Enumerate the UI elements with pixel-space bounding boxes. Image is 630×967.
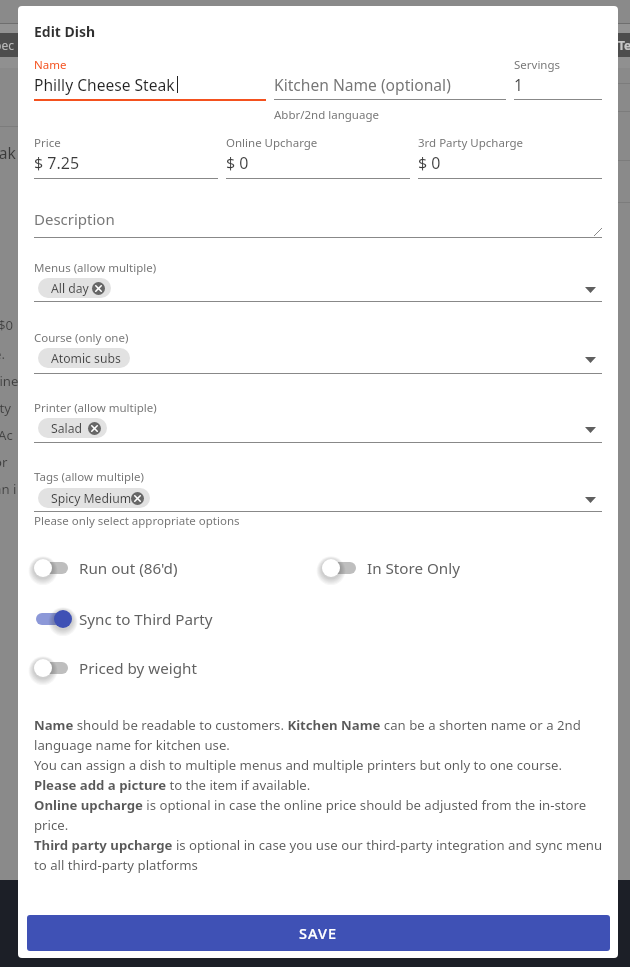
staticText: SAVE	[299, 923, 338, 943]
button[interactable]: Open dropdown	[578, 488, 602, 512]
staticText: $ 0	[418, 152, 441, 174]
staticText: $ 7.25	[34, 152, 80, 174]
staticText: Online Upcharge	[226, 135, 318, 151]
staticText: Atomic subs	[51, 350, 121, 367]
staticText: Salad	[51, 420, 83, 437]
button[interactable]: Open dropdown	[578, 418, 602, 442]
staticText: $ 0	[226, 152, 249, 174]
staticText: Te	[618, 37, 630, 53]
staticText: Course (only one)	[34, 330, 129, 346]
staticText: an i	[0, 480, 17, 498]
staticText: Servings	[514, 57, 561, 73]
staticText: Menus (allow multiple)	[34, 260, 157, 276]
button[interactable]: All day	[38, 278, 111, 298]
staticText: Edit Dish	[34, 22, 96, 41]
button[interactable]: Atomic subs	[38, 348, 130, 368]
button[interactable]: SAVE	[27, 915, 610, 951]
staticText: Tags (allow multiple)	[34, 469, 145, 485]
staticText: In Store Only	[367, 558, 460, 579]
staticText: Price	[34, 135, 61, 151]
button[interactable]: Priced by weight	[34, 652, 284, 684]
staticText: Sync to Third Party	[79, 609, 213, 630]
staticText: $0	[0, 316, 14, 334]
staticText: Printer (allow multiple)	[34, 400, 157, 416]
staticText: Ac	[0, 426, 13, 444]
staticText: Name should be readable to customers. Ki…	[34, 716, 603, 874]
button[interactable]: Open dropdown	[578, 278, 602, 302]
staticText: rty	[0, 399, 11, 417]
staticText: pec	[0, 37, 14, 53]
staticText: or	[0, 453, 8, 471]
staticText: Kitchen Name (optional)	[274, 74, 451, 95]
button[interactable]: Run out (86'd)	[34, 552, 284, 584]
staticText: Spicy Medium	[51, 490, 132, 507]
staticText: line	[0, 372, 19, 390]
staticText: Abbr/2nd language	[274, 107, 379, 123]
staticText: eak	[0, 142, 16, 163]
button[interactable]: Open dropdown	[578, 348, 602, 372]
staticText: e.	[0, 345, 5, 363]
staticText: Priced by weight	[79, 658, 197, 679]
button[interactable]: Sync to Third Party	[34, 603, 284, 635]
staticText: Description	[34, 209, 115, 229]
staticText: Name	[34, 57, 67, 73]
staticText: Run out (86'd)	[79, 558, 178, 579]
staticText: 1	[514, 74, 523, 95]
staticText: Philly Cheese Steak	[34, 74, 175, 95]
button[interactable]: In Store Only	[322, 552, 572, 584]
staticText: 3rd Party Upcharge	[418, 135, 524, 151]
staticText: All day	[51, 280, 89, 297]
button[interactable]: Spicy Medium	[38, 488, 150, 508]
button[interactable]: Salad	[38, 418, 107, 438]
staticText: Please only select appropriate options	[34, 513, 240, 529]
